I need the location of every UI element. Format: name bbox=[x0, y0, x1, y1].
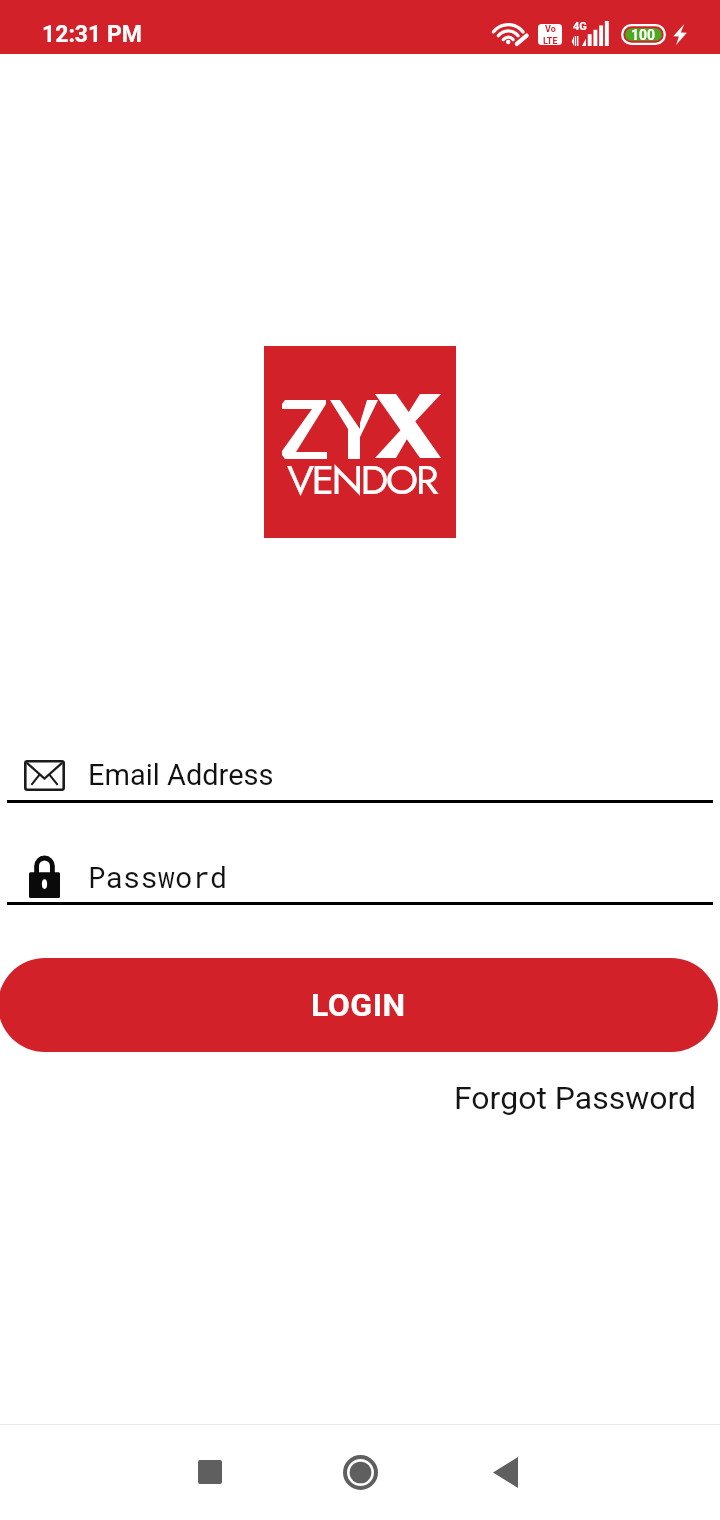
button[interactable]: Password bbox=[7, 850, 713, 905]
button[interactable]: Recent apps bbox=[174, 1436, 246, 1508]
staticText: Email Address bbox=[88, 758, 274, 792]
staticText: 4G bbox=[573, 20, 587, 33]
staticText: LTE bbox=[543, 36, 558, 45]
staticText: LOGIN bbox=[311, 986, 406, 1024]
button[interactable]: Home bbox=[324, 1436, 396, 1508]
staticText: Vo bbox=[545, 24, 556, 35]
staticText: Password bbox=[88, 858, 228, 896]
staticText: Forgot Password bbox=[454, 1079, 697, 1117]
button[interactable]: Email Address bbox=[7, 748, 713, 803]
staticText: 100 bbox=[631, 27, 656, 43]
button[interactable]: Forgot Password bbox=[420, 1074, 720, 1122]
staticText: VENDOR bbox=[287, 450, 437, 509]
button[interactable]: Back bbox=[469, 1436, 541, 1508]
staticText: 12:31 PM bbox=[42, 21, 142, 48]
button[interactable]: LOGIN bbox=[0, 958, 718, 1052]
